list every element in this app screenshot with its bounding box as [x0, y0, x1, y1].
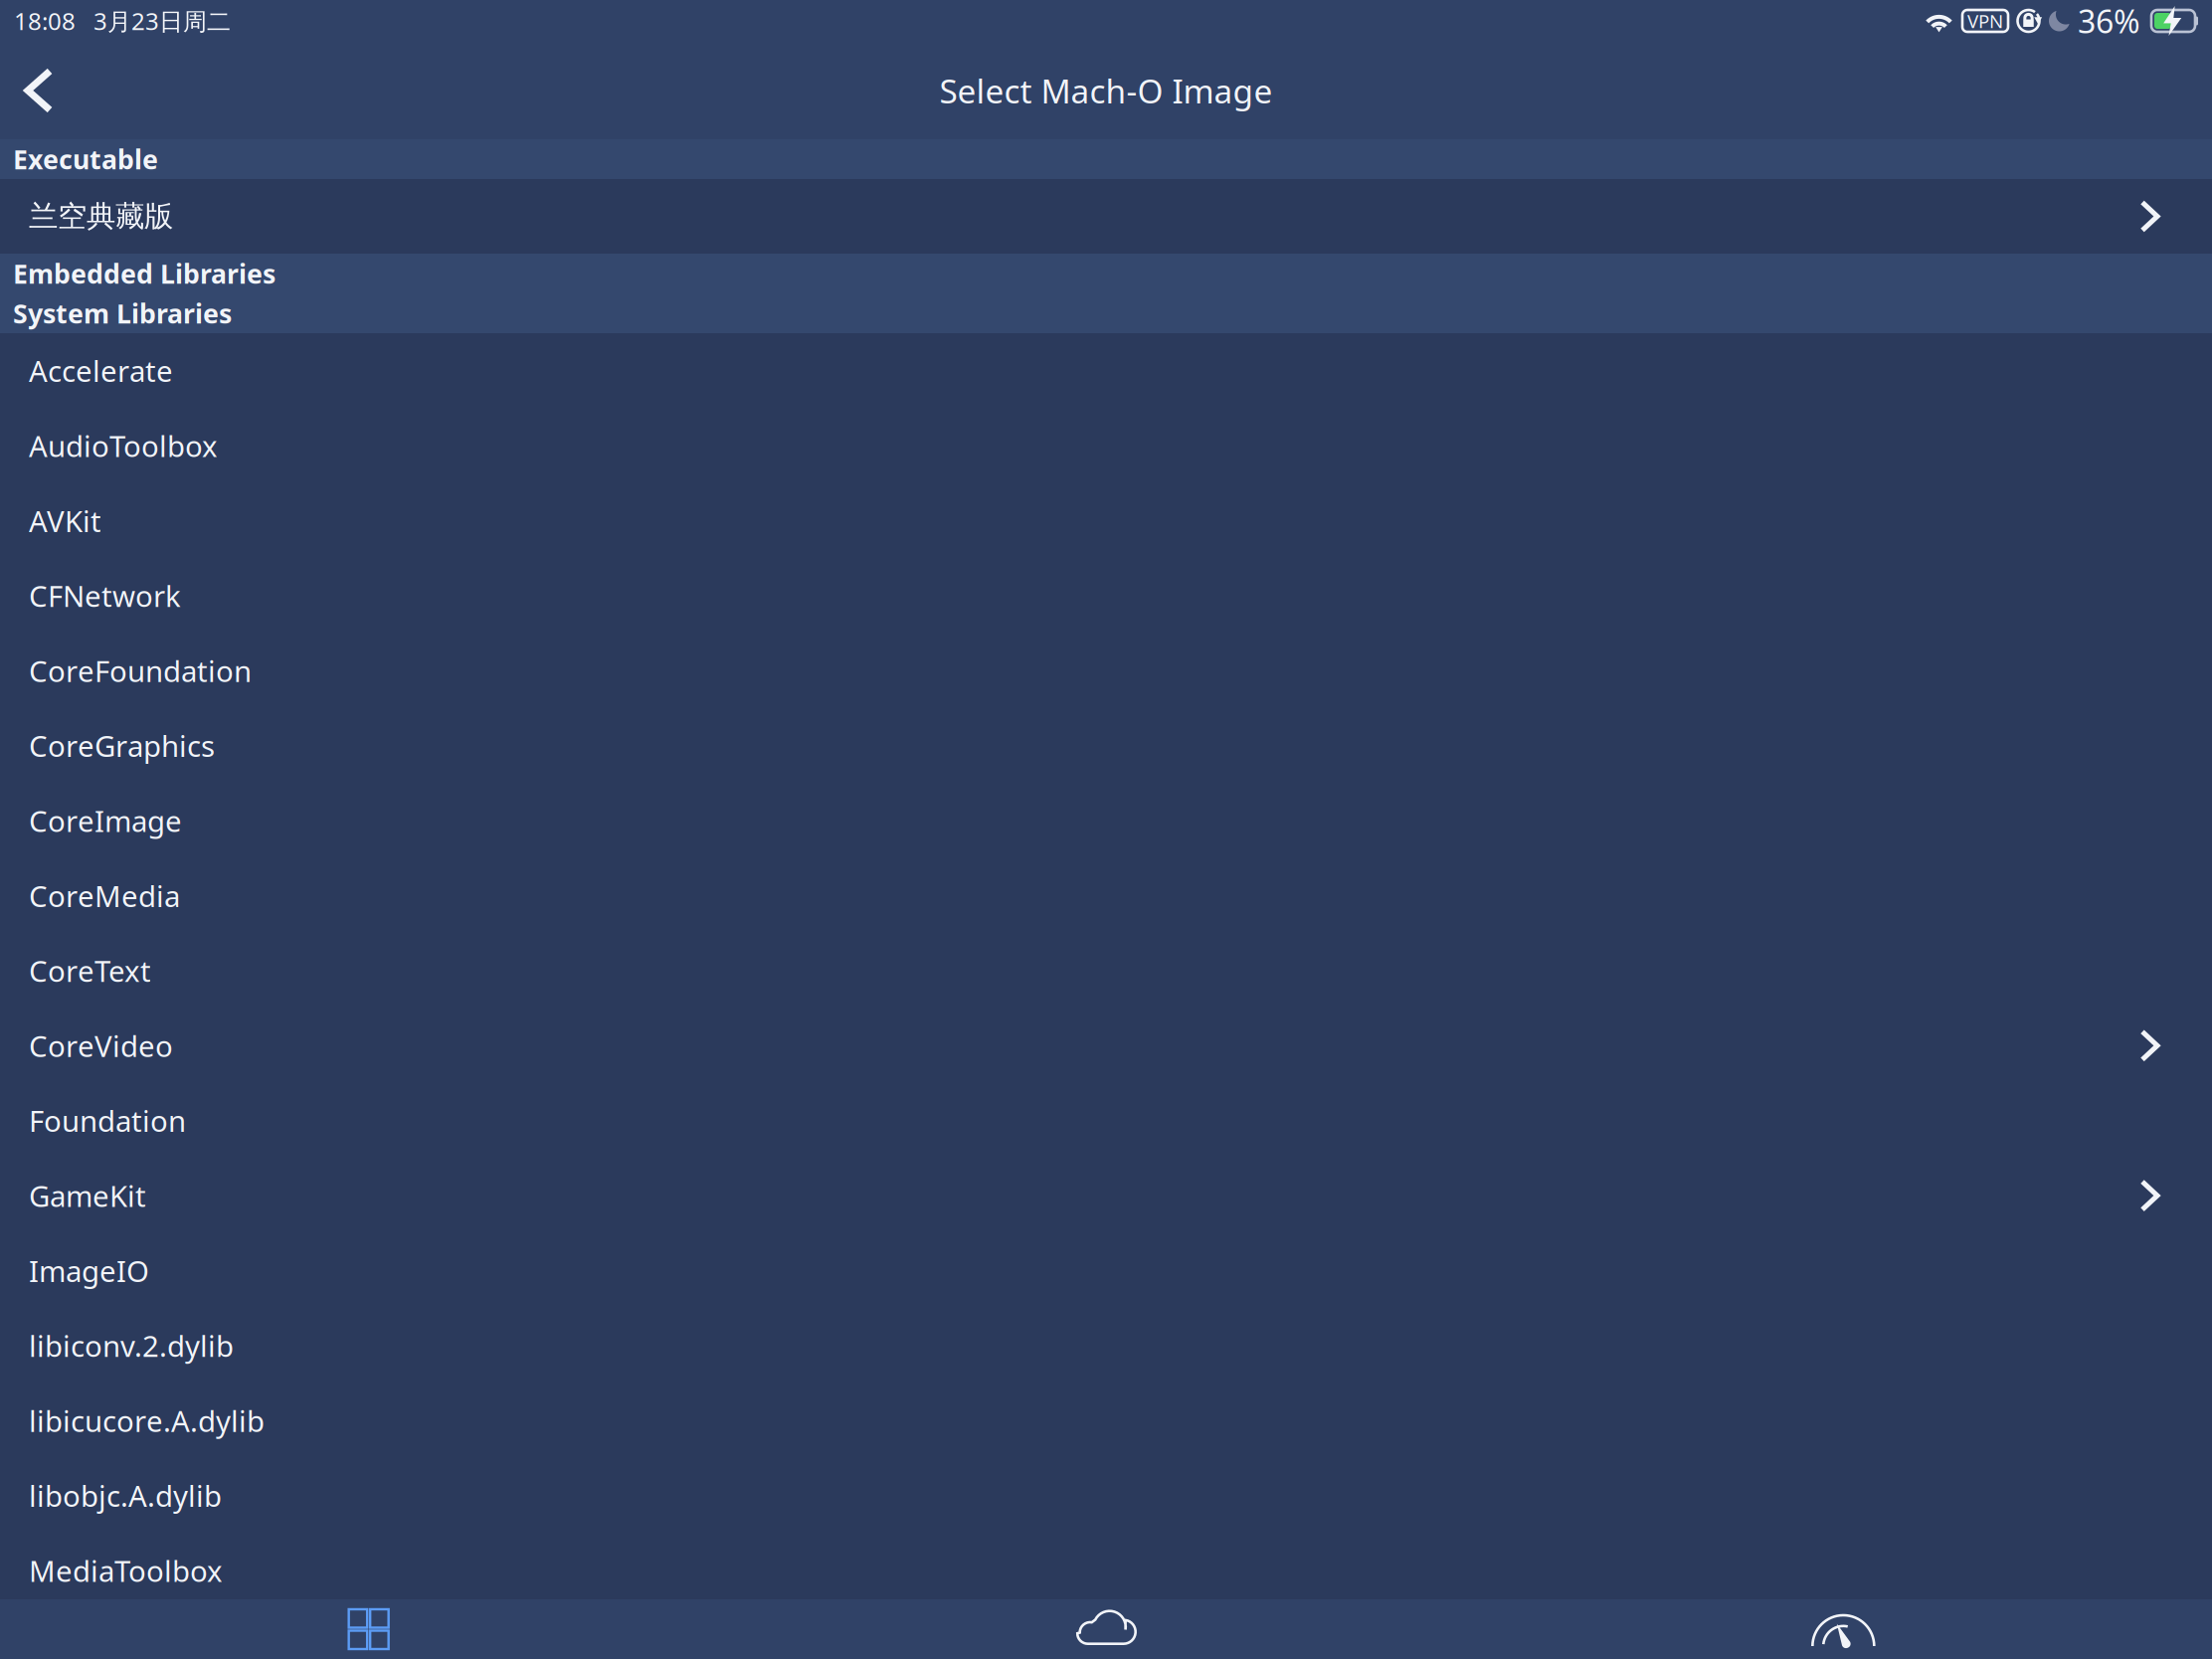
staticText: CFNetwork: [29, 576, 181, 615]
button[interactable]: Foundation: [0, 1083, 2212, 1158]
staticText: AudioToolbox: [29, 426, 218, 465]
staticText: libiconv.2.dylib: [29, 1326, 234, 1365]
button[interactable]: CoreText: [0, 933, 2212, 1008]
button[interactable]: CFNetwork: [0, 558, 2212, 633]
button[interactable]: AVKit: [0, 483, 2212, 558]
button[interactable]: libobjc.A.dylib: [0, 1458, 2212, 1533]
staticText: System Libraries: [13, 296, 232, 331]
button[interactable]: Back: [0, 49, 72, 132]
staticText: ImageIO: [29, 1251, 149, 1290]
button[interactable]: GameKit: [0, 1158, 2212, 1233]
button[interactable]: CoreGraphics: [0, 708, 2212, 783]
button[interactable]: ImageIO: [0, 1233, 2212, 1308]
staticText: Foundation: [29, 1101, 186, 1140]
staticText: VPN: [1967, 9, 2003, 33]
staticText: CoreFoundation: [29, 651, 252, 690]
staticText: libicucore.A.dylib: [29, 1401, 265, 1440]
staticText: libobjc.A.dylib: [29, 1476, 222, 1515]
staticText: 兰空典藏版: [29, 198, 173, 234]
staticText: CoreText: [29, 951, 151, 990]
staticText: 36%: [2078, 0, 2140, 42]
button[interactable]: Cloud: [737, 1599, 1475, 1659]
button[interactable]: Accelerate: [0, 333, 2212, 408]
staticText: Accelerate: [29, 351, 173, 390]
staticText: MediaToolbox: [29, 1551, 223, 1590]
staticText: Select Mach-O Image: [939, 69, 1273, 113]
button[interactable]: MediaToolbox: [0, 1533, 2212, 1608]
staticText: AVKit: [29, 501, 101, 540]
button[interactable]: 兰空典藏版: [0, 179, 2212, 254]
button[interactable]: Performance: [1475, 1599, 2212, 1659]
staticText: GameKit: [29, 1176, 146, 1215]
staticText: CoreMedia: [29, 876, 180, 915]
button[interactable]: Apps: [0, 1599, 737, 1659]
button[interactable]: AudioToolbox: [0, 408, 2212, 483]
button[interactable]: CoreVideo: [0, 1008, 2212, 1083]
button[interactable]: libiconv.2.dylib: [0, 1308, 2212, 1383]
button[interactable]: libicucore.A.dylib: [0, 1383, 2212, 1458]
staticText: Embedded Libraries: [13, 256, 276, 291]
staticText: CoreVideo: [29, 1026, 173, 1065]
button[interactable]: CoreFoundation: [0, 633, 2212, 708]
staticText: CoreGraphics: [29, 726, 215, 765]
staticText: 18:08 3月23日周二: [14, 5, 231, 37]
button[interactable]: CoreImage: [0, 783, 2212, 858]
staticText: CoreImage: [29, 801, 182, 840]
staticText: Executable: [13, 142, 158, 177]
button[interactable]: CoreMedia: [0, 858, 2212, 933]
